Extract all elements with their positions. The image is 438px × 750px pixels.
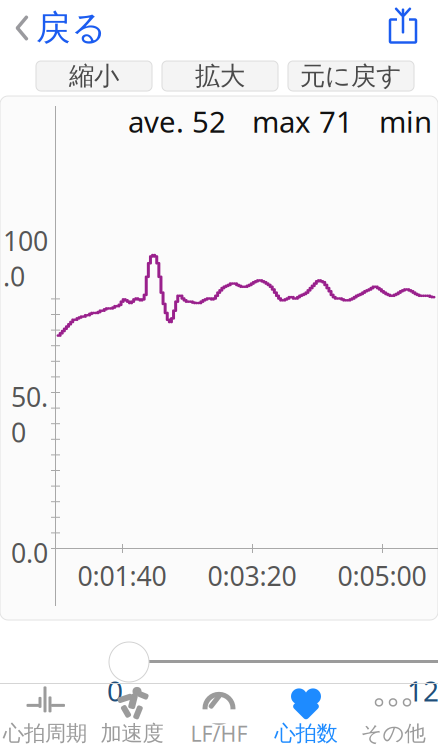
button[interactable]: その他 (349, 684, 436, 750)
staticText: LF/HF (190, 719, 247, 748)
button[interactable]: 心拍数 (262, 684, 349, 750)
button[interactable]: 縮小 (36, 61, 152, 91)
staticText: 100.0 (3, 223, 48, 294)
button[interactable]: 心拍周期 (1, 684, 88, 750)
staticText: 加速度 (100, 720, 163, 747)
staticText: 1288 (407, 672, 438, 709)
button[interactable]: 共有 (386, 4, 420, 44)
staticText: max 71 (252, 102, 353, 141)
staticText: 戻る (36, 7, 106, 49)
button[interactable]: 元に戻す (288, 61, 414, 91)
button[interactable]: 加速度 (88, 684, 175, 750)
staticText: 心拍周期 (3, 720, 87, 747)
staticText: 縮小 (69, 60, 119, 91)
button[interactable]: LF/HF (175, 684, 262, 750)
button[interactable]: Scrub position (109, 642, 149, 682)
staticText: 拡大 (195, 60, 245, 91)
staticText: 心拍数 (274, 720, 337, 747)
staticText: 0.0 (11, 535, 48, 570)
staticText: その他 (360, 720, 425, 747)
staticText: 0:01:40 (77, 558, 166, 593)
staticText: 0:05:00 (337, 558, 426, 593)
button[interactable]: 戻る (2, 2, 118, 54)
staticText: 0:03:20 (207, 558, 296, 593)
staticText: 元に戻す (300, 60, 402, 91)
staticText: ave. 52 (128, 102, 226, 141)
staticText: 0 (107, 672, 123, 709)
staticText: min 47 (379, 102, 438, 141)
staticText: 50.0 (11, 379, 48, 450)
button[interactable]: 拡大 (162, 61, 278, 91)
